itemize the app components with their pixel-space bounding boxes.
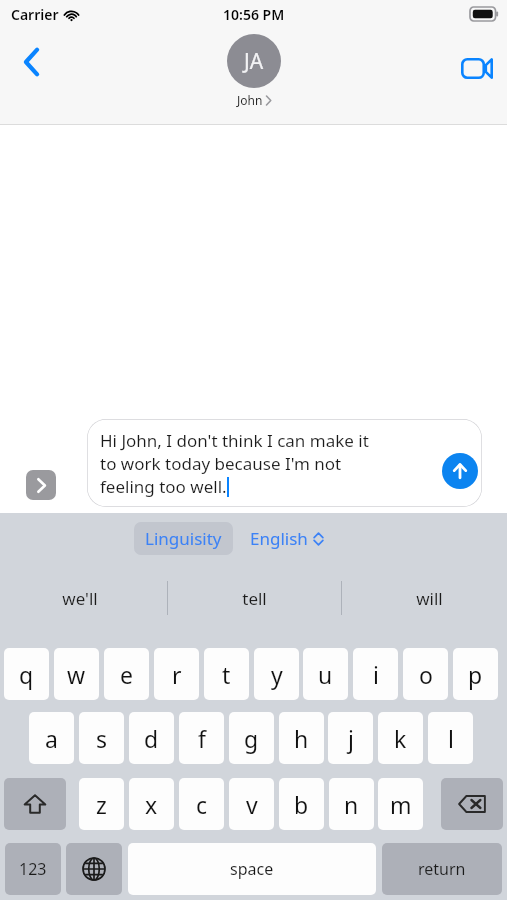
staticText: b [294,789,309,820]
button[interactable]: 123 [5,843,61,895]
button[interactable]: e [104,648,149,700]
button[interactable]: l [428,712,473,764]
button[interactable]: p [453,648,498,700]
staticText: l [448,723,454,754]
button[interactable]: i [353,648,398,700]
staticText: JA [244,47,264,76]
button[interactable]: tell [172,569,337,627]
staticText: y [271,659,283,690]
button[interactable]: Linguisity [134,522,233,555]
staticText: h [294,723,309,754]
staticText: John [237,92,263,108]
button[interactable]: b [279,778,324,830]
button[interactable]: v [229,778,274,830]
staticText: Carrier [11,5,59,24]
button[interactable]: x [129,778,174,830]
staticText: o [419,659,433,690]
button[interactable]: j [328,712,373,764]
staticText: s [96,723,108,754]
button[interactable]: Send [442,453,478,489]
button[interactable]: m [378,778,423,830]
button[interactable]: we'll [0,569,162,627]
button[interactable]: h [279,712,324,764]
staticText: f [198,723,206,754]
staticText: k [394,723,407,754]
staticText: a [45,723,58,754]
button[interactable]: o [403,648,448,700]
staticText: Linguisity [145,527,222,550]
button[interactable]: Backspace [441,778,503,830]
staticText: x [145,789,158,820]
staticText: j [348,723,354,754]
button[interactable]: s [79,712,124,764]
staticText: n [344,789,359,820]
button[interactable]: return [382,843,502,895]
staticText: g [244,723,259,754]
staticText: Hi John, I don't think I can make it [100,429,369,452]
button[interactable]: English [250,522,324,555]
button[interactable]: Next keyboard [66,843,122,895]
staticText: p [468,659,483,690]
button[interactable]: k [378,712,423,764]
staticText: English [250,527,308,550]
staticText: e [120,659,133,690]
staticText: 10:56 PM [223,5,285,24]
staticText: we'll [62,587,98,610]
staticText: tell [242,587,267,610]
staticText: space [230,858,274,880]
button[interactable]: Video call [455,46,499,90]
button[interactable]: JA [227,34,281,108]
staticText: m [390,789,412,820]
button[interactable]: f [179,712,224,764]
staticText: t [222,659,231,690]
button[interactable]: Back [10,40,54,84]
button[interactable]: will [347,569,507,627]
button[interactable]: t [204,648,249,700]
button[interactable]: q [4,648,49,700]
button[interactable]: u [303,648,348,700]
button[interactable]: g [229,712,274,764]
button[interactable]: a [29,712,74,764]
staticText: u [318,659,333,690]
button[interactable]: w [54,648,99,700]
staticText: q [19,659,34,690]
staticText: return [418,858,466,880]
button[interactable]: n [329,778,374,830]
button[interactable]: y [254,648,299,700]
button[interactable]: Shift [4,778,66,830]
staticText: 123 [19,858,47,880]
staticText: to work today because I'm not [100,452,342,475]
staticText: feeling too well. [100,475,227,498]
staticText: z [96,789,107,820]
staticText: will [416,587,443,610]
staticText: w [67,659,86,690]
staticText: v [246,789,258,820]
staticText: c [196,789,208,820]
button[interactable]: c [179,778,224,830]
button[interactable]: d [129,712,174,764]
button[interactable]: space [128,843,376,895]
staticText: r [172,659,182,690]
staticText: d [144,723,159,754]
button[interactable]: z [79,778,124,830]
staticText: i [373,659,379,690]
button[interactable]: More apps [26,470,56,500]
button[interactable]: r [154,648,199,700]
